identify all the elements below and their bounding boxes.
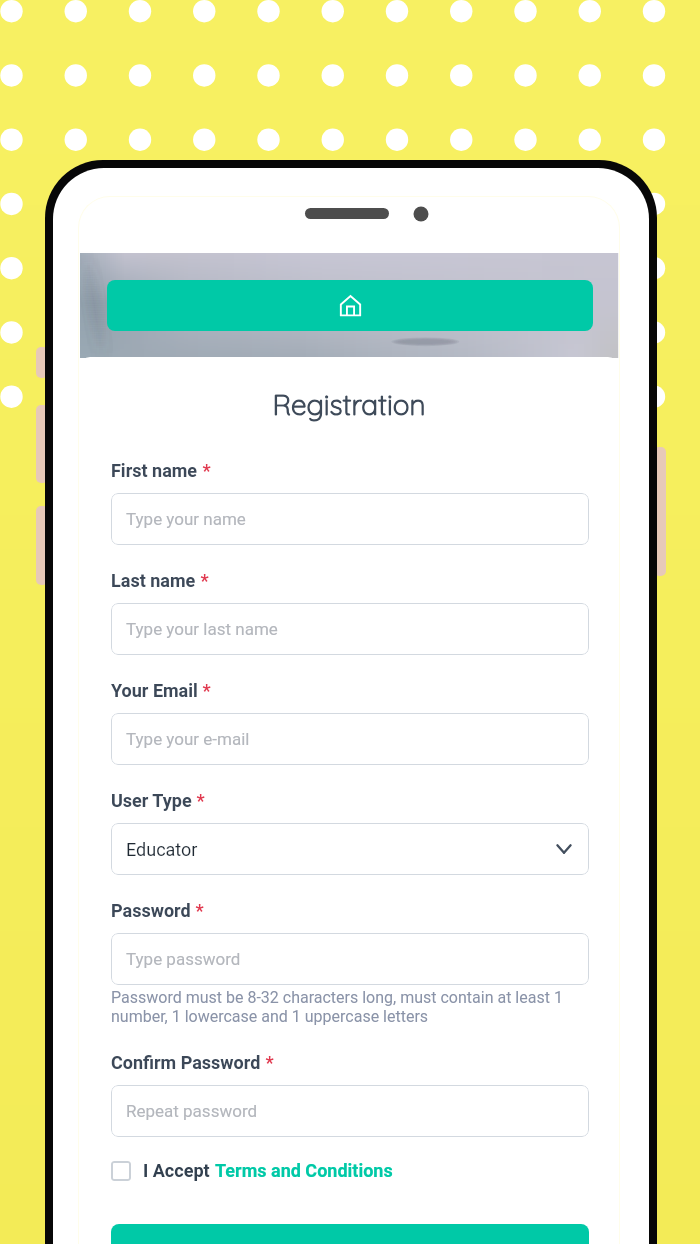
staticText: *	[261, 1052, 274, 1073]
staticText: Password must be 8-32 characters long, m…	[111, 988, 583, 1026]
staticText: I Accept	[143, 1160, 215, 1181]
staticText: *	[198, 680, 211, 701]
staticText: User Type	[111, 790, 192, 811]
staticText: Terms and Conditions	[215, 1160, 393, 1181]
button[interactable]: Repeat password	[111, 1085, 589, 1137]
staticText: *	[191, 900, 204, 921]
staticText: Type your last name	[126, 619, 278, 639]
staticText: Type password	[126, 949, 241, 969]
staticText: Type your e-mail	[126, 729, 250, 749]
staticText: *	[196, 570, 209, 591]
button[interactable]: Registration	[111, 1224, 589, 1244]
staticText: Password	[111, 900, 191, 921]
button[interactable]: Home	[107, 280, 593, 331]
staticText: *	[192, 790, 205, 811]
staticText: *	[198, 460, 211, 481]
button[interactable]: Type your last name	[111, 603, 589, 655]
staticText: Educator	[126, 839, 198, 860]
button[interactable]: Type your name	[111, 493, 589, 545]
staticText: Confirm Password	[111, 1052, 261, 1073]
staticText: Registration	[80, 387, 618, 422]
staticText: Type your name	[126, 509, 246, 529]
staticText: Repeat password	[126, 1101, 258, 1121]
staticText: Your Email	[111, 680, 198, 701]
button[interactable]: Type password	[111, 933, 589, 985]
staticText: Registration	[80, 387, 618, 422]
staticText: Last name	[111, 570, 196, 591]
button[interactable]: Type your e-mail	[111, 713, 589, 765]
button[interactable]: I Accept	[111, 1158, 393, 1183]
staticText: First name	[111, 460, 198, 481]
button[interactable]: Educator	[111, 823, 589, 875]
